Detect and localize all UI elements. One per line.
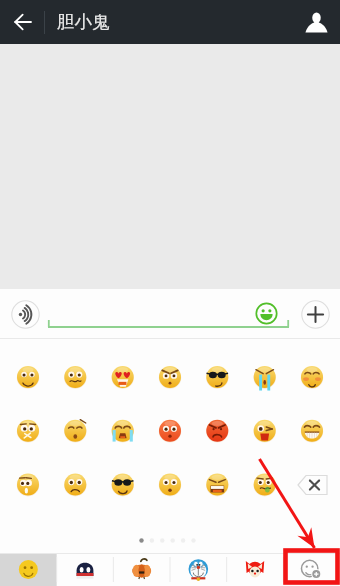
button[interactable]: Emoji <box>242 402 291 456</box>
button[interactable]: Emoji <box>242 338 291 402</box>
button[interactable]: Emoji <box>0 338 48 402</box>
button[interactable]: Emoji <box>144 456 193 510</box>
button[interactable]: Ghost stickers <box>56 553 112 586</box>
button[interactable]: Emoji <box>48 338 96 402</box>
button[interactable]: Pumpkin stickers <box>112 553 169 586</box>
button[interactable]: Fox stickers <box>226 553 283 586</box>
button[interactable]: Back <box>3 2 43 42</box>
button[interactable]: Emoji <box>291 338 340 402</box>
button[interactable]: Backspace <box>291 456 340 510</box>
button[interactable]: Emoji <box>0 402 48 456</box>
button[interactable]: Doraemon stickers <box>169 553 226 586</box>
button[interactable]: More options <box>301 300 330 329</box>
button[interactable]: Emoji <box>96 338 144 402</box>
button[interactable]: Emoji <box>144 402 193 456</box>
button[interactable]: Emoji <box>48 456 96 510</box>
button[interactable]: Emoji <box>48 402 96 456</box>
button[interactable]: Emoji <box>242 456 291 510</box>
button[interactable]: Contact profile <box>296 2 336 42</box>
button[interactable]: Emoji keyboard <box>255 302 278 325</box>
button[interactable]: Emoji <box>96 456 144 510</box>
button[interactable]: Emoji <box>96 402 144 456</box>
button[interactable]: Emoji <box>291 402 340 456</box>
button[interactable]: Smileys <box>0 553 56 586</box>
staticText: 胆小鬼 <box>57 11 110 33</box>
button[interactable]: Add stickers <box>283 553 340 586</box>
button[interactable]: Emoji <box>144 338 193 402</box>
button[interactable]: Emoji <box>193 402 242 456</box>
button[interactable]: Emoji <box>193 338 242 402</box>
button[interactable]: Emoji <box>0 456 48 510</box>
button[interactable]: Emoji <box>193 456 242 510</box>
button[interactable]: Voice message <box>11 300 40 329</box>
